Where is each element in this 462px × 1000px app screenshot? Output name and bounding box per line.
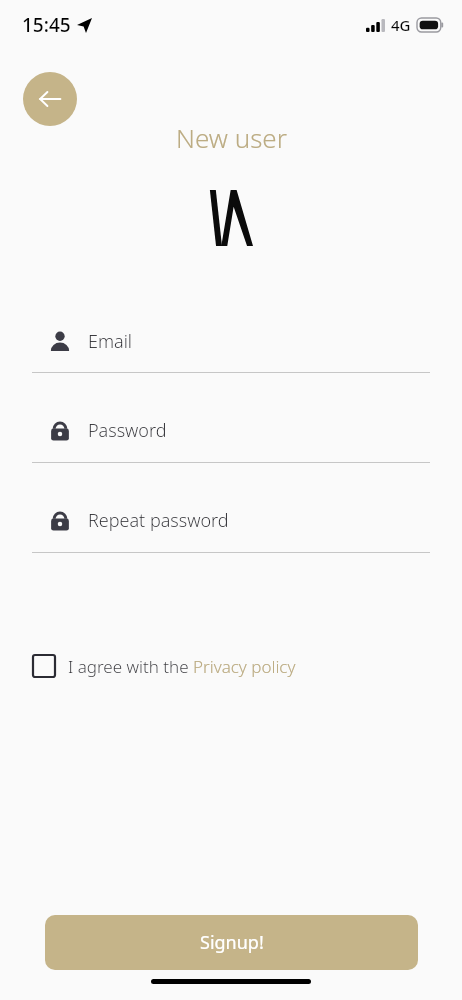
button[interactable]: I agree with the Privacy policy: [32, 654, 296, 678]
staticText: I agree with the Privacy policy: [68, 655, 296, 678]
button[interactable]: Signup!: [45, 915, 418, 970]
staticText: Password: [88, 418, 167, 443]
button[interactable]: Back: [23, 72, 77, 126]
staticText: Repeat password: [88, 508, 229, 533]
button[interactable]: Repeat password: [32, 497, 430, 543]
button[interactable]: Email: [32, 318, 430, 364]
staticText: Signup!: [200, 930, 264, 955]
staticText: New user: [176, 120, 287, 155]
staticText: 4G: [391, 15, 411, 35]
staticText: Email: [88, 329, 133, 354]
button[interactable]: Password: [32, 407, 430, 453]
staticText: 15:45: [22, 12, 71, 38]
